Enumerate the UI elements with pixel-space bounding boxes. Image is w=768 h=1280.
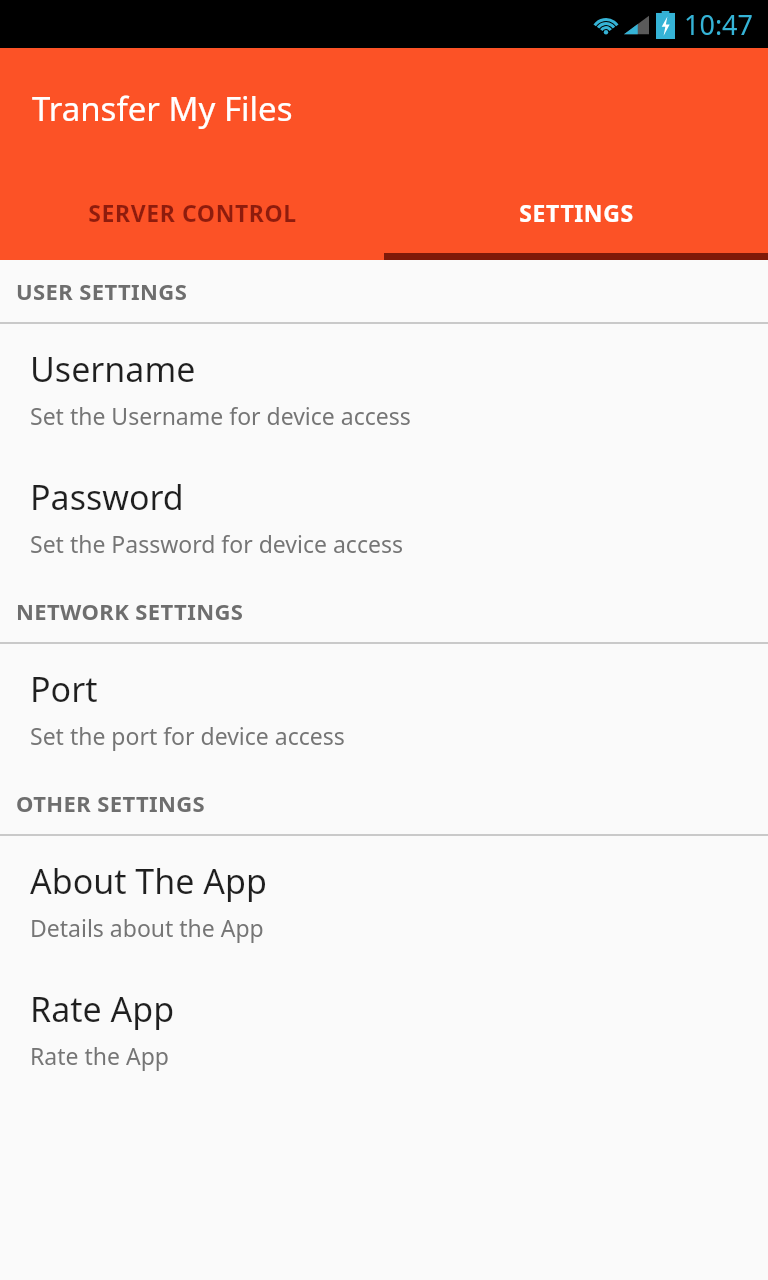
staticText: Port [30, 666, 98, 712]
staticText: OTHER SETTINGS [16, 788, 206, 818]
staticText: Rate App [30, 986, 175, 1032]
staticText: SETTINGS [519, 197, 634, 228]
button[interactable]: Password [0, 452, 768, 580]
staticText: Set the Password for device access [30, 528, 403, 559]
staticText: USER SETTINGS [16, 276, 188, 306]
button[interactable]: SERVER CONTROL [0, 164, 384, 260]
button[interactable]: About The App [0, 836, 768, 964]
button[interactable]: Rate App [0, 964, 768, 1092]
button[interactable]: SETTINGS [384, 164, 768, 260]
staticText: Set the Username for device access [30, 400, 411, 431]
button[interactable]: Username [0, 324, 768, 452]
staticText: About The App [30, 858, 267, 904]
staticText: Password [30, 474, 184, 520]
staticText: Details about the App [30, 912, 264, 943]
staticText: Rate the App [30, 1040, 169, 1071]
staticText: Set the port for device access [30, 720, 345, 751]
button[interactable]: Port [0, 644, 768, 772]
staticText: NETWORK SETTINGS [16, 596, 244, 626]
staticText: SERVER CONTROL [88, 197, 297, 228]
staticText: Username [30, 346, 196, 392]
staticText: Transfer My Files [32, 86, 293, 131]
staticText: 10:47 [684, 6, 754, 43]
